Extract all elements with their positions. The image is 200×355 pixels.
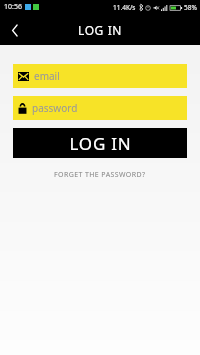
button[interactable]: Back: [0, 15, 30, 45]
button[interactable]: FORGET THE PASSWORD?: [46, 167, 154, 183]
button[interactable]: password: [13, 96, 187, 120]
button[interactable]: email: [13, 64, 187, 88]
staticText: 10:56: [4, 2, 22, 12]
staticText: password: [32, 101, 78, 115]
staticText: 58%: [184, 3, 197, 12]
button[interactable]: LOG IN: [13, 128, 187, 158]
staticText: LOG IN: [78, 22, 123, 38]
staticText: 11.4K/s: [113, 3, 136, 12]
staticText: email: [34, 69, 60, 83]
staticText: LOG IN: [69, 132, 132, 155]
